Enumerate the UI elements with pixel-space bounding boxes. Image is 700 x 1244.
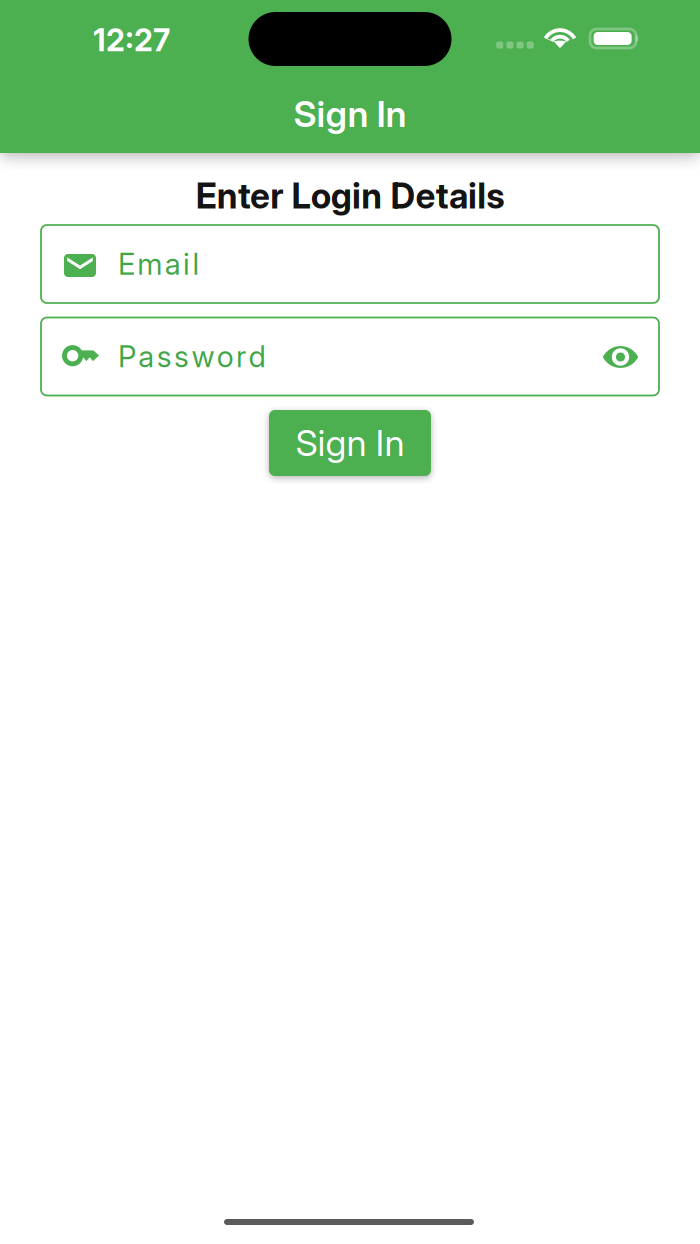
staticText: Password [118, 339, 265, 374]
staticText: Sign In [295, 421, 404, 465]
button[interactable]: Password [41, 317, 659, 395]
button[interactable]: Sign In [240, 86, 460, 142]
button[interactable]: Email [41, 225, 659, 303]
button[interactable]: Show password [591, 328, 649, 386]
staticText: Sign In [293, 92, 406, 136]
staticText: 12:27 [93, 21, 170, 58]
staticText: Email [118, 246, 199, 282]
button[interactable]: Sign In [269, 410, 431, 476]
staticText: Enter Login Details [196, 175, 504, 217]
